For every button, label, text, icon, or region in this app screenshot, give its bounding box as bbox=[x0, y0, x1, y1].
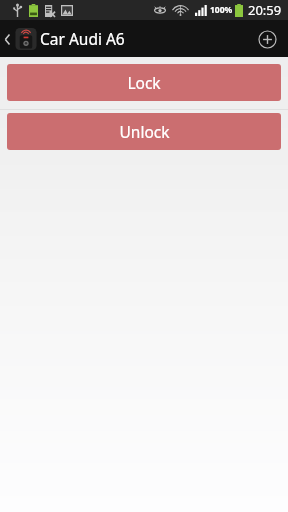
button[interactable]: Navigate up bbox=[0, 27, 42, 51]
button[interactable]: Add bbox=[252, 24, 282, 54]
staticText: Car Audi A6 bbox=[40, 28, 125, 49]
staticText: 100% bbox=[210, 4, 233, 16]
other: App icon bbox=[14, 27, 38, 51]
staticText: Unlock bbox=[119, 121, 170, 142]
staticText: Lock bbox=[127, 72, 161, 93]
button[interactable]: Unlock bbox=[7, 113, 281, 150]
staticText: 20:59 bbox=[248, 1, 282, 19]
button[interactable]: Lock bbox=[7, 64, 281, 101]
